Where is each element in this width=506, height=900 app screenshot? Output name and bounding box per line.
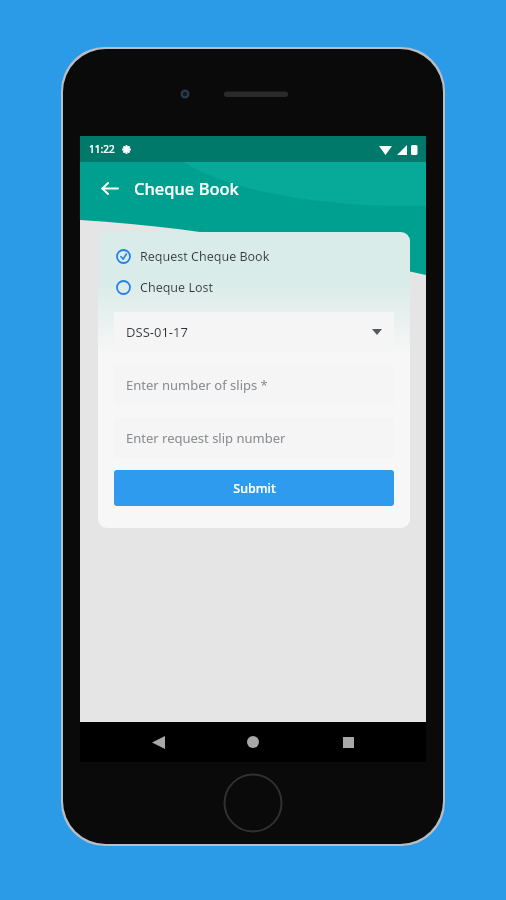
button[interactable]: Navigate up [94, 173, 124, 203]
staticText: 11:22 [89, 142, 115, 156]
staticText: DSS-01-17 [126, 323, 188, 341]
button[interactable]: Home [236, 725, 270, 759]
button[interactable]: Enter request slip number [114, 418, 394, 458]
staticText: Enter request slip number [126, 429, 286, 447]
button[interactable]: DSS-01-17 [114, 312, 394, 352]
button[interactable]: Recent apps [331, 725, 365, 759]
button[interactable]: Submit [114, 470, 394, 506]
staticText: Cheque Book [134, 177, 239, 199]
button[interactable]: Cheque Lost [98, 272, 410, 303]
button[interactable]: Enter number of slips * [114, 365, 394, 405]
button[interactable]: Request Cheque Book [98, 241, 410, 272]
staticText: Request Cheque Book [140, 248, 270, 265]
button[interactable]: Back [141, 725, 175, 759]
staticText: Enter number of slips * [126, 376, 268, 394]
staticText: Cheque Lost [140, 279, 214, 296]
staticText: Submit [233, 480, 276, 497]
